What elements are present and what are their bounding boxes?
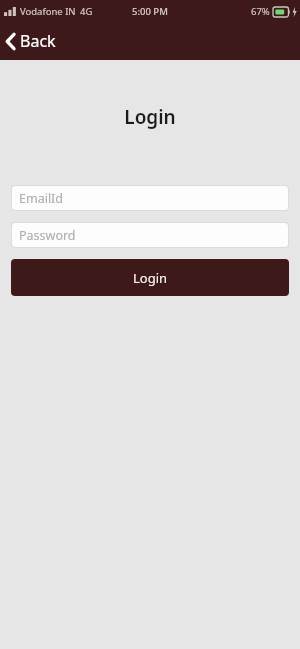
staticText: Back: [20, 30, 56, 52]
button[interactable]: Back: [0, 22, 66, 60]
staticText: 5:00 PM: [132, 5, 168, 18]
button[interactable]: Login: [11, 259, 289, 296]
staticText: Login: [0, 104, 300, 130]
staticText: 4G: [80, 5, 93, 18]
staticText: Password: [19, 227, 76, 244]
button[interactable]: Password: [12, 223, 288, 247]
staticText: Vodafone IN: [20, 5, 76, 18]
staticText: 67%: [251, 5, 270, 18]
button[interactable]: EmailId: [12, 186, 288, 210]
staticText: Login: [133, 269, 168, 287]
staticText: EmailId: [19, 190, 64, 207]
